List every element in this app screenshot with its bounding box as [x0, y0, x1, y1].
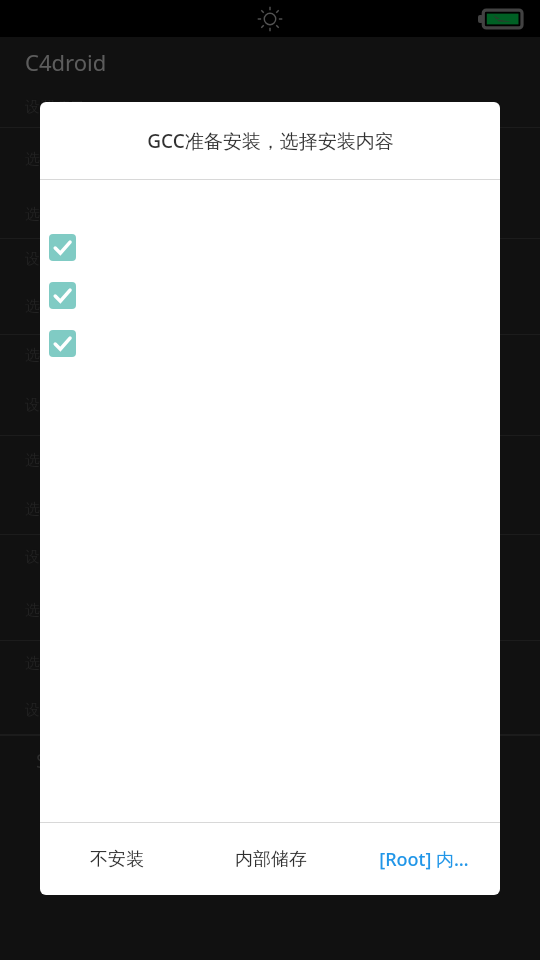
staticText: 内部储存	[235, 848, 307, 871]
staticText: 设置项目	[25, 250, 85, 269]
staticText: [Root] 内…	[379, 847, 469, 872]
staticText: 设置项目	[25, 396, 85, 415]
staticText: 设置项目	[25, 701, 85, 720]
staticText: 选项	[25, 297, 55, 316]
staticText: C4droid	[25, 47, 107, 77]
button[interactable]	[40, 282, 500, 309]
staticText: 选项	[25, 451, 55, 470]
staticText: GCC准备安装，选择安装内容	[147, 128, 394, 154]
staticText: 选项	[25, 150, 55, 169]
other: Battery charging	[478, 7, 522, 31]
staticText: SDL参数	[36, 748, 109, 774]
staticText: 设置项目	[25, 98, 85, 117]
other: Brightness	[257, 6, 283, 32]
staticText: 选项	[25, 500, 55, 519]
staticText: 选项	[25, 654, 55, 673]
button[interactable]: 内部储存	[194, 823, 347, 895]
button[interactable]: [Root] 内…	[347, 823, 500, 895]
button[interactable]: 不安装	[40, 823, 194, 895]
staticText: 选项	[25, 601, 55, 620]
button[interactable]	[40, 234, 500, 261]
staticText: 不安装	[90, 848, 144, 871]
staticText: 选项	[25, 205, 55, 224]
button[interactable]	[40, 330, 500, 357]
staticText: 选项	[25, 346, 55, 365]
staticText: 设置项目	[25, 548, 85, 567]
